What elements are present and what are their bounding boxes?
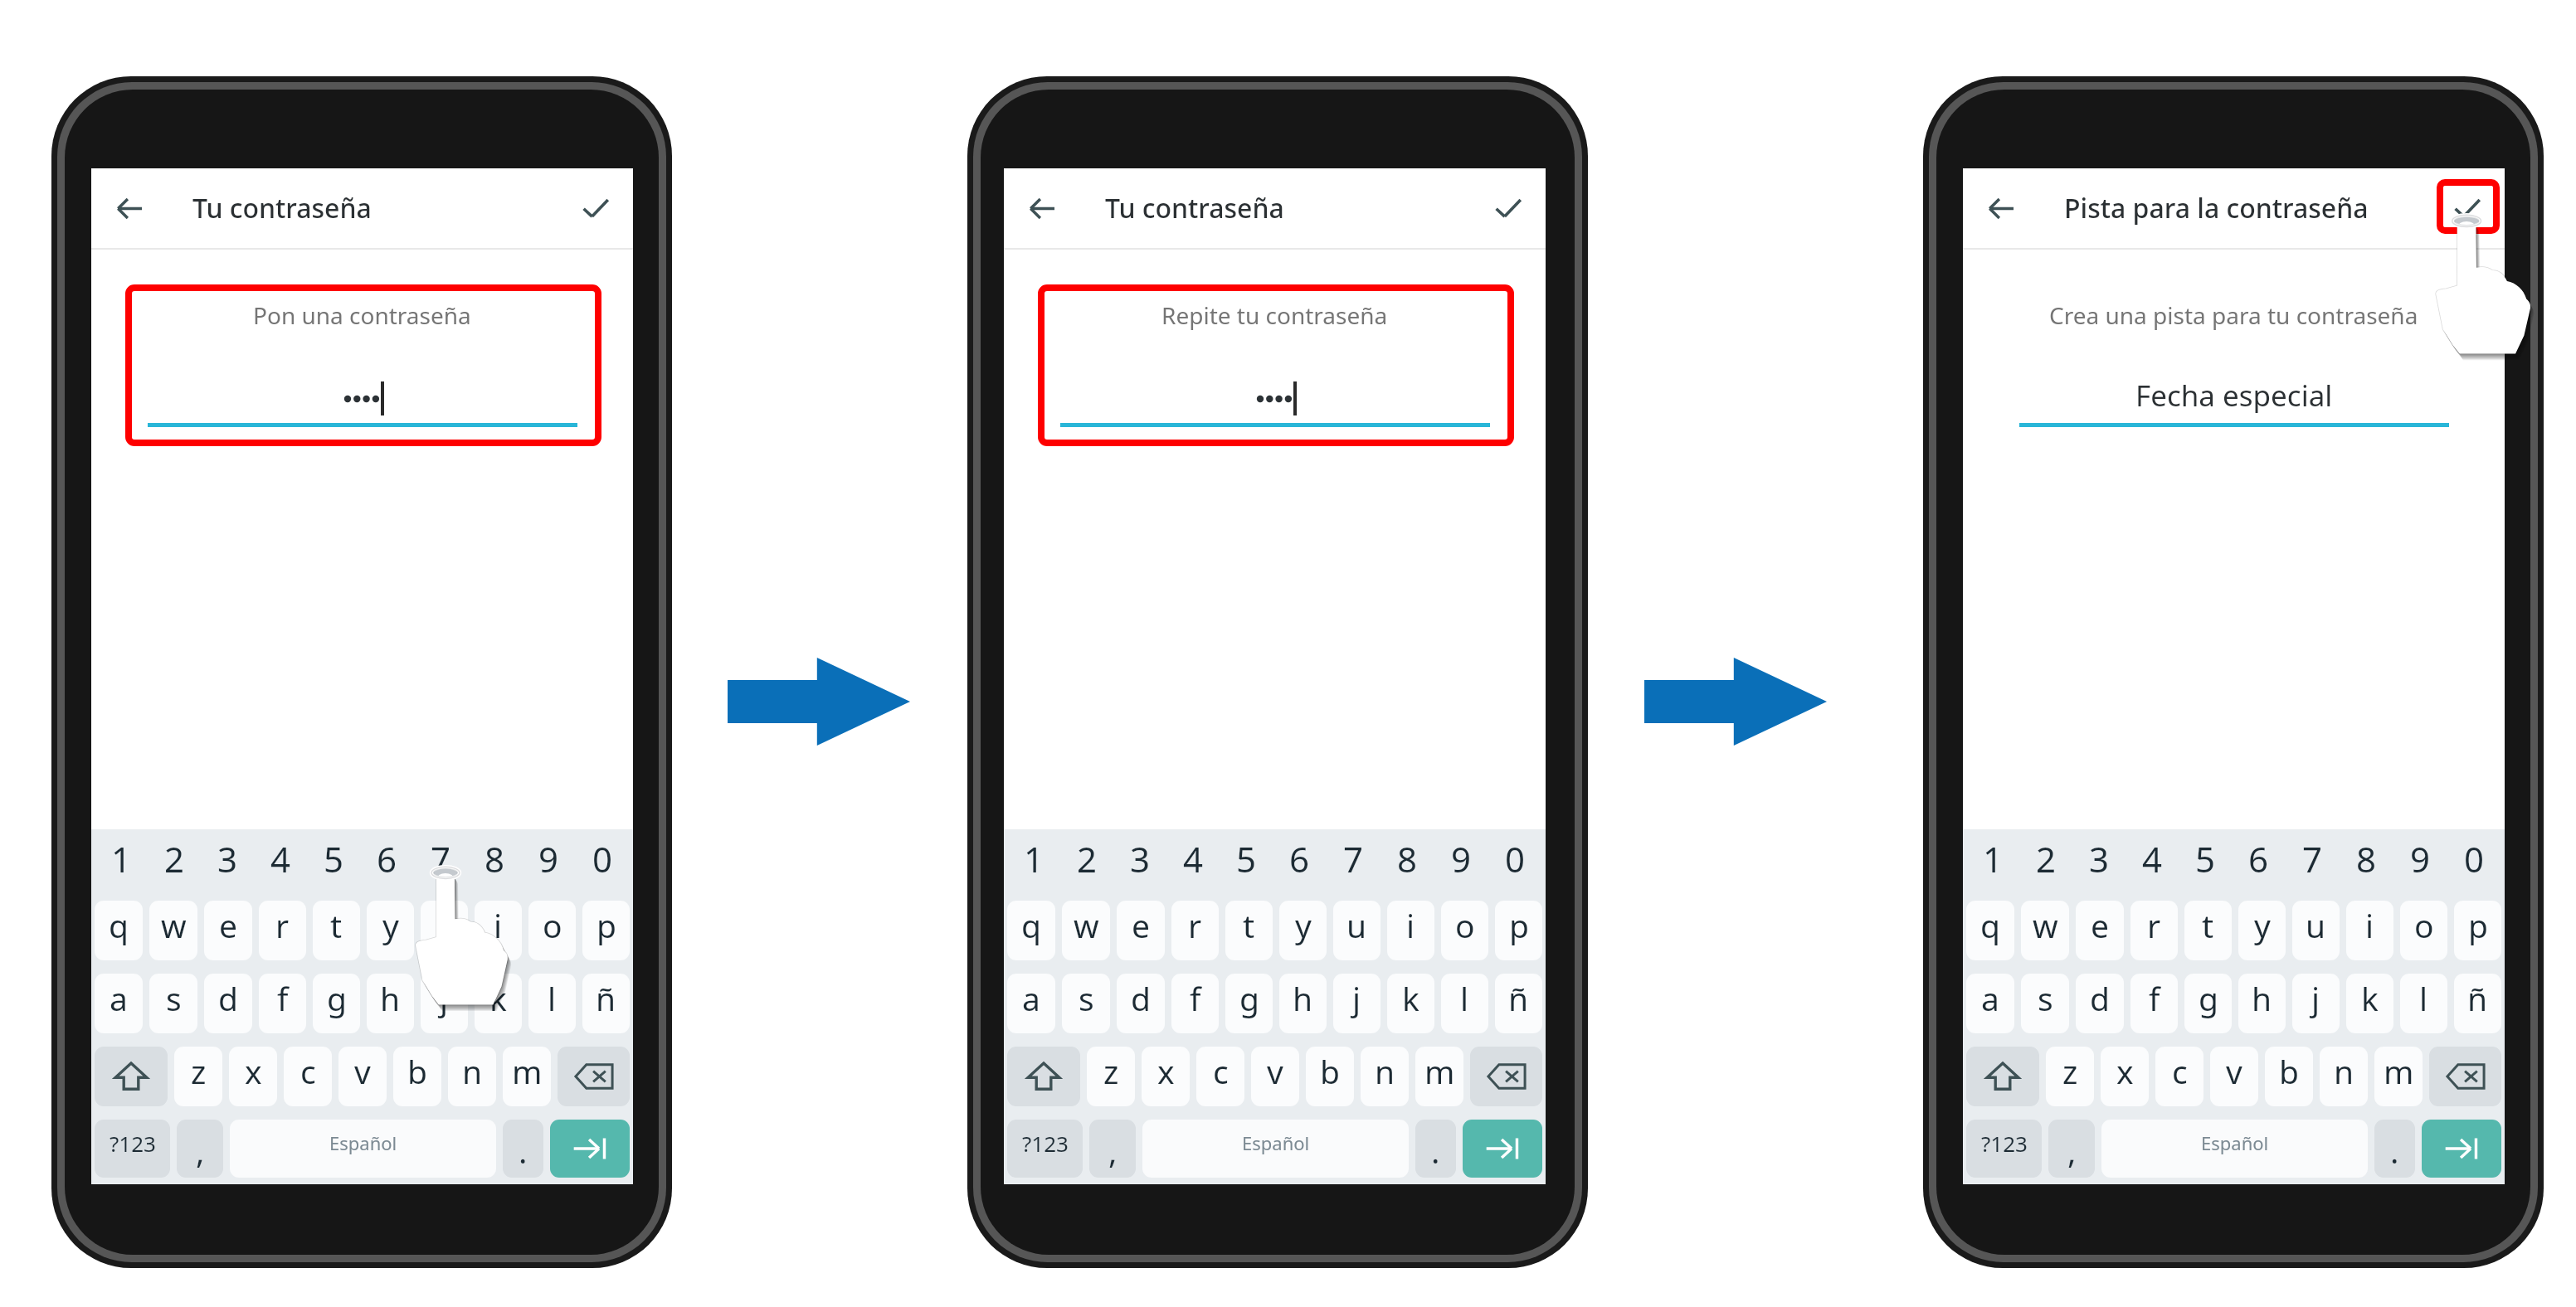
button[interactable]: 5 xyxy=(2179,829,2232,894)
button[interactable]: 0 xyxy=(576,829,630,894)
button[interactable]: h xyxy=(367,974,414,1033)
button[interactable]: 6 xyxy=(1273,829,1327,894)
button[interactable]: 5 xyxy=(307,829,360,894)
button[interactable]: Back xyxy=(1970,177,2033,240)
button[interactable]: j xyxy=(1333,974,1381,1033)
button[interactable]: r xyxy=(2130,901,2178,960)
button[interactable]: Español xyxy=(2101,1120,2368,1178)
button[interactable]: x xyxy=(2101,1047,2149,1106)
button[interactable]: h xyxy=(2238,974,2286,1033)
button[interactable]: k xyxy=(475,974,522,1033)
button[interactable]: f xyxy=(259,974,306,1033)
button[interactable]: Español xyxy=(230,1120,496,1178)
button[interactable]: 8 xyxy=(2340,829,2393,894)
button[interactable]: ?123 xyxy=(95,1120,170,1178)
button[interactable]: m xyxy=(1415,1047,1463,1106)
button[interactable]: 8 xyxy=(468,829,522,894)
button[interactable]: Shift xyxy=(1966,1047,2039,1106)
button[interactable]: w xyxy=(1062,901,1110,960)
button[interactable]: 8 xyxy=(1381,829,1434,894)
button[interactable]: Backspace xyxy=(558,1047,630,1106)
button[interactable]: t xyxy=(1225,901,1273,960)
button[interactable]: 1 xyxy=(95,829,148,894)
button[interactable]: f xyxy=(2130,974,2178,1033)
button[interactable]: 5 xyxy=(1220,829,1273,894)
button[interactable]: h xyxy=(1279,974,1327,1033)
button[interactable]: 2 xyxy=(148,829,201,894)
button[interactable]: q xyxy=(1966,901,2014,960)
button[interactable]: c xyxy=(2155,1047,2203,1106)
button[interactable]: ?123 xyxy=(1966,1120,2042,1178)
button[interactable]: v xyxy=(1251,1047,1299,1106)
button[interactable]: g xyxy=(1225,974,1273,1033)
button[interactable]: n xyxy=(1361,1047,1409,1106)
button[interactable]: 9 xyxy=(1434,829,1488,894)
button[interactable]: d xyxy=(2076,974,2124,1033)
button[interactable]: Back xyxy=(98,177,161,240)
button[interactable]: Shift xyxy=(95,1047,168,1106)
button[interactable]: Español xyxy=(1142,1120,1409,1178)
button[interactable]: z xyxy=(174,1047,222,1106)
button[interactable]: Confirm xyxy=(1477,177,1540,240)
button[interactable]: v xyxy=(338,1047,387,1106)
button[interactable]: p xyxy=(2454,901,2501,960)
button[interactable]: q xyxy=(95,901,143,960)
button[interactable]: z xyxy=(1087,1047,1135,1106)
button[interactable]: l xyxy=(528,974,576,1033)
button[interactable]: g xyxy=(2184,974,2232,1033)
button[interactable]: , xyxy=(1089,1120,1136,1178)
button[interactable]: w xyxy=(2021,901,2069,960)
button[interactable]: o xyxy=(2400,901,2447,960)
button[interactable]: s xyxy=(2021,974,2069,1033)
button[interactable]: Next xyxy=(550,1120,630,1178)
button[interactable]: t xyxy=(2184,901,2232,960)
button[interactable]: . xyxy=(1415,1120,1456,1178)
button[interactable]: 7 xyxy=(1327,829,1381,894)
button[interactable]: y xyxy=(2238,901,2286,960)
button[interactable]: ñ xyxy=(582,974,630,1033)
button[interactable]: e xyxy=(204,901,252,960)
button[interactable]: d xyxy=(204,974,252,1033)
button[interactable]: k xyxy=(1387,974,1434,1033)
button[interactable]: r xyxy=(1171,901,1219,960)
button[interactable]: i xyxy=(2346,901,2393,960)
button[interactable]: a xyxy=(1007,974,1055,1033)
button[interactable]: 6 xyxy=(2232,829,2286,894)
button[interactable]: 4 xyxy=(254,829,307,894)
button[interactable]: j xyxy=(421,974,468,1033)
button[interactable]: e xyxy=(1117,901,1165,960)
button[interactable]: w xyxy=(149,901,197,960)
button[interactable]: ?123 xyxy=(1007,1120,1083,1178)
button[interactable]: ñ xyxy=(2454,974,2501,1033)
button[interactable]: b xyxy=(2265,1047,2313,1106)
button[interactable]: Pon una contraseña xyxy=(141,284,583,434)
button[interactable]: s xyxy=(1062,974,1110,1033)
button[interactable]: z xyxy=(2046,1047,2094,1106)
button[interactable]: , xyxy=(2048,1120,2095,1178)
button[interactable]: 0 xyxy=(1488,829,1542,894)
button[interactable]: 3 xyxy=(1113,829,1166,894)
button[interactable]: x xyxy=(1142,1047,1190,1106)
button[interactable]: Backspace xyxy=(2429,1047,2501,1106)
button[interactable]: . xyxy=(503,1120,543,1178)
button[interactable]: 4 xyxy=(2126,829,2179,894)
button[interactable]: 3 xyxy=(2072,829,2126,894)
button[interactable]: a xyxy=(95,974,143,1033)
button[interactable]: y xyxy=(1279,901,1327,960)
button[interactable]: e xyxy=(2076,901,2124,960)
button[interactable]: l xyxy=(2400,974,2447,1033)
button[interactable]: Next xyxy=(2422,1120,2501,1178)
button[interactable]: Repite tu contraseña xyxy=(1054,284,1496,434)
button[interactable]: i xyxy=(1387,901,1434,960)
button[interactable]: 6 xyxy=(360,829,414,894)
button[interactable]: u xyxy=(421,901,468,960)
button[interactable]: s xyxy=(149,974,197,1033)
button[interactable]: 0 xyxy=(2447,829,2501,894)
button[interactable]: m xyxy=(503,1047,551,1106)
button[interactable]: Shift xyxy=(1007,1047,1080,1106)
button[interactable]: 2 xyxy=(1060,829,1113,894)
button[interactable]: c xyxy=(1196,1047,1244,1106)
button[interactable]: v xyxy=(2210,1047,2258,1106)
button[interactable]: Crea una pista para tu contraseña xyxy=(2013,284,2455,434)
button[interactable]: 9 xyxy=(522,829,576,894)
